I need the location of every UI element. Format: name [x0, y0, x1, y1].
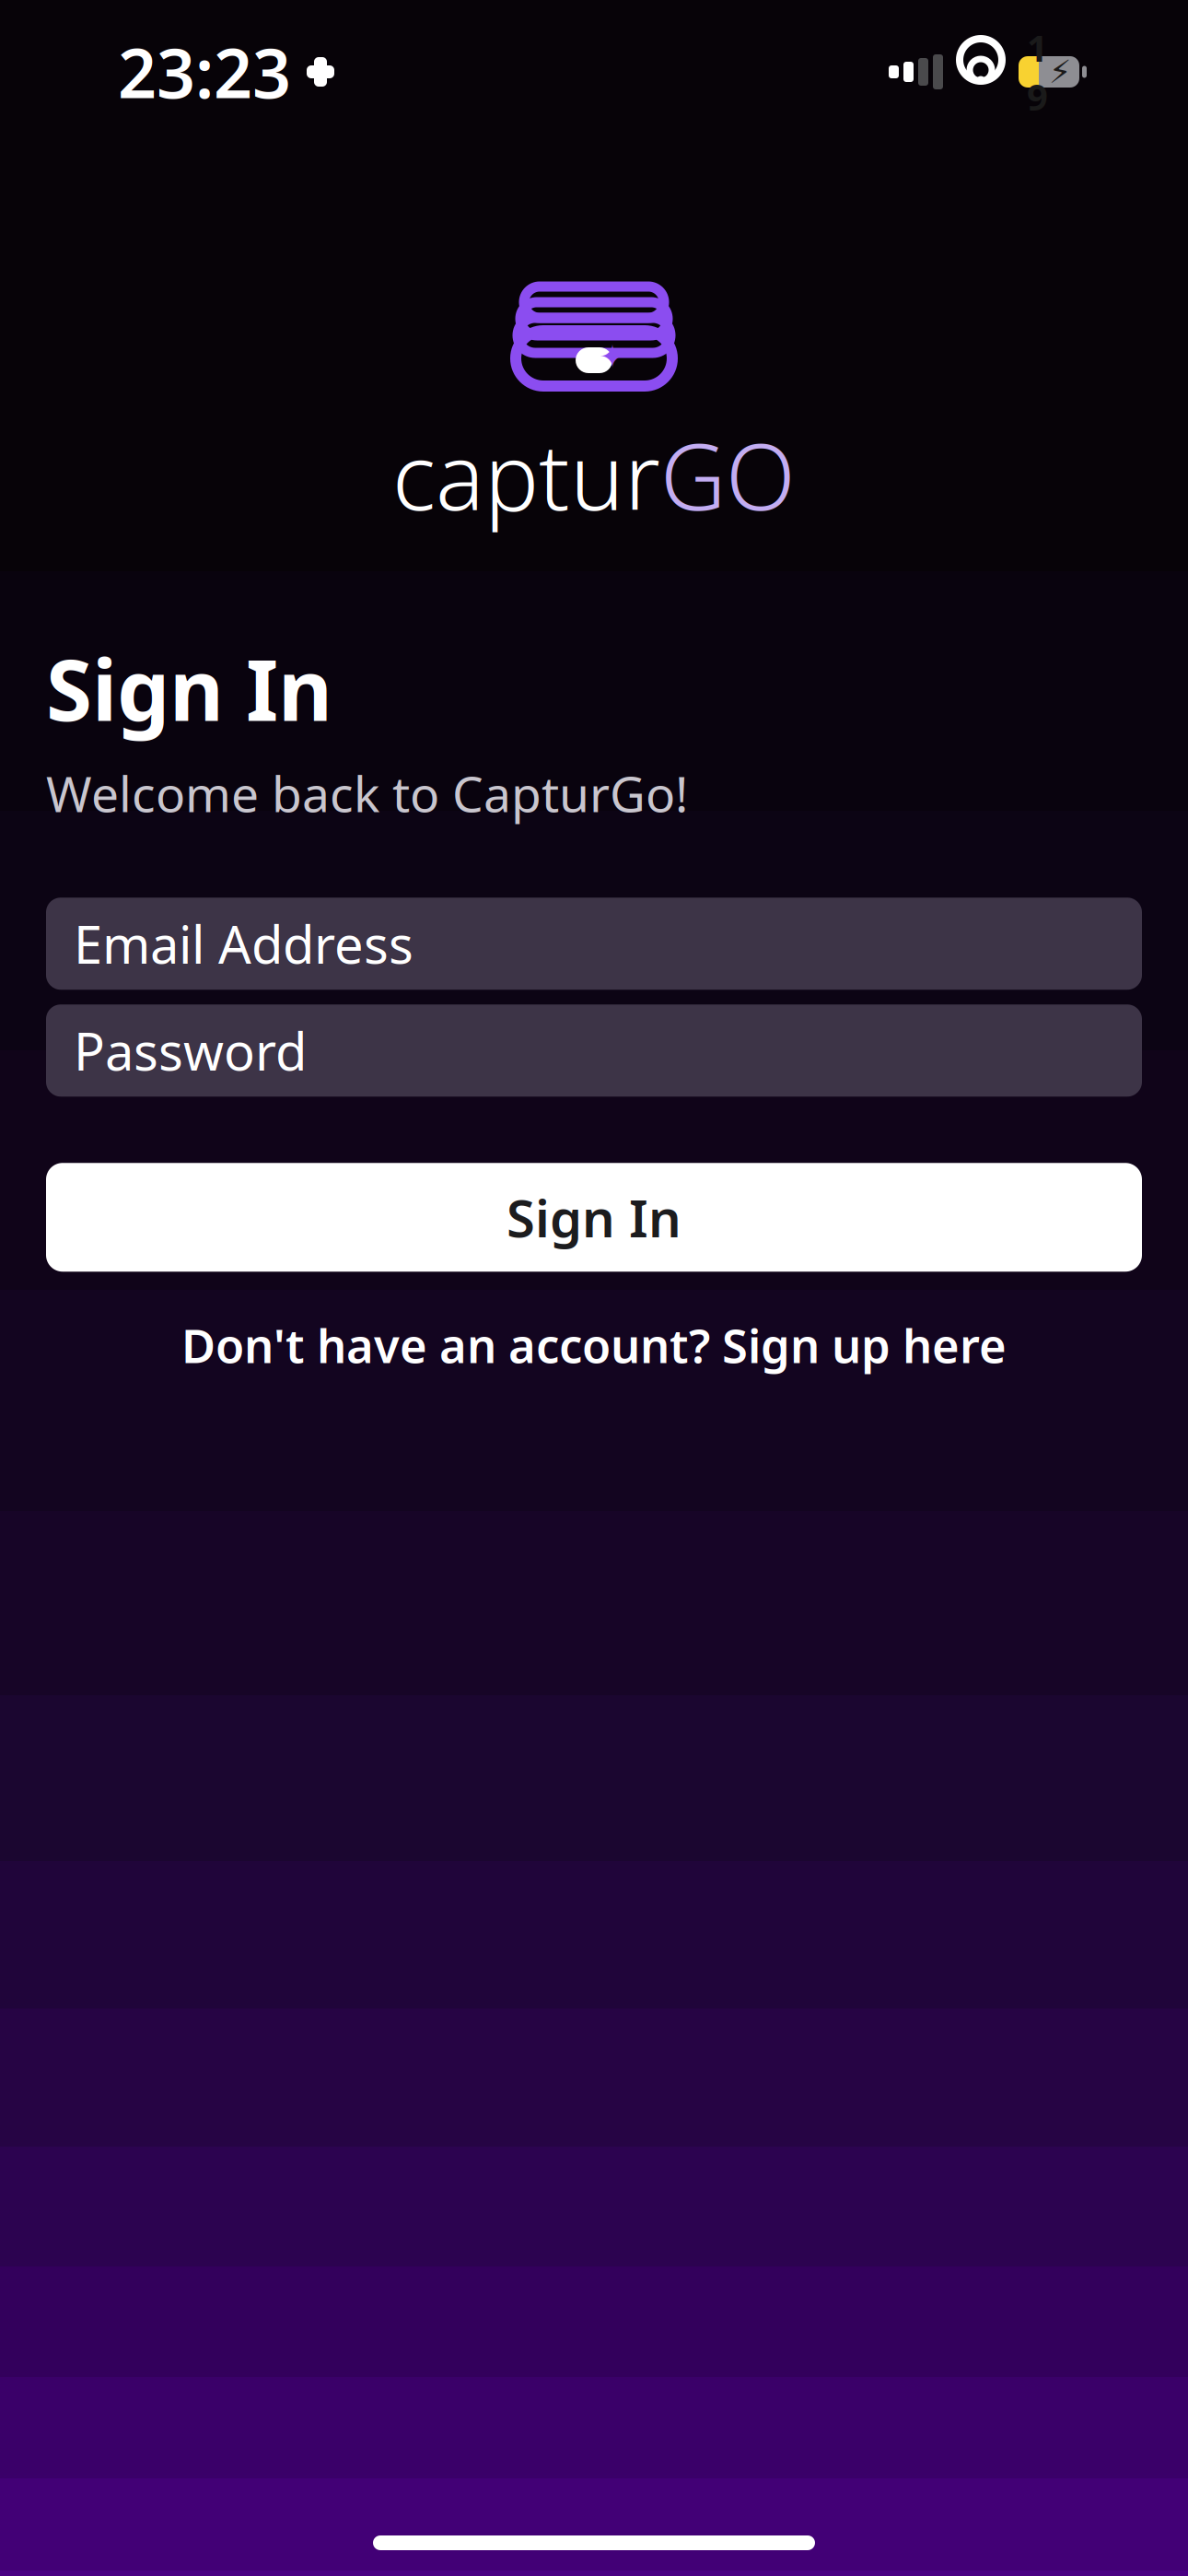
staticText: ⚡︎: [1049, 54, 1071, 90]
button[interactable]: Email Address: [46, 898, 1142, 990]
staticText: Sign In: [46, 633, 332, 744]
staticText: 19: [1027, 23, 1048, 121]
button[interactable]: Password: [46, 1004, 1142, 1097]
staticText: captur: [392, 415, 660, 535]
staticText: 23:23: [118, 27, 291, 117]
staticText: Password: [74, 1016, 307, 1085]
staticText: Email Address: [74, 909, 413, 978]
staticText: Sign In: [507, 1183, 681, 1252]
staticText: Don't have an account? Sign up here: [181, 1314, 1007, 1376]
staticText: Welcome back to CapturGo!: [46, 760, 688, 826]
staticText: ✦: [599, 338, 626, 375]
staticText: GO: [660, 415, 796, 535]
button[interactable]: Don't have an account? Sign up here: [46, 1305, 1142, 1385]
button[interactable]: Sign In: [46, 1163, 1142, 1272]
